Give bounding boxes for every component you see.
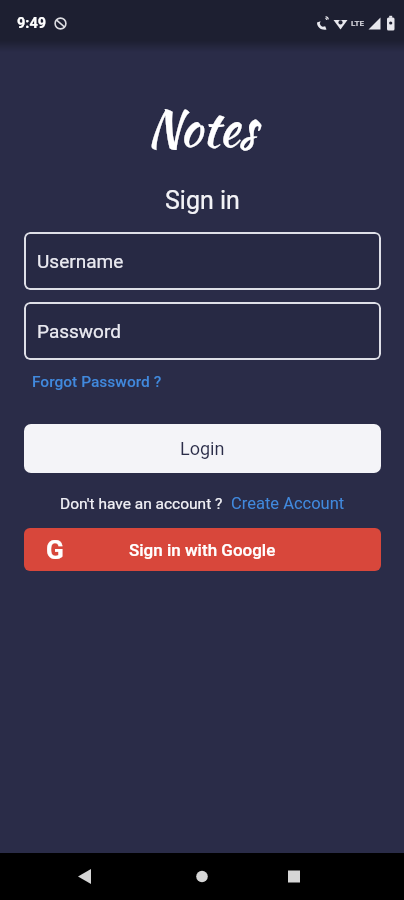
staticText: Sign in [165,186,240,215]
staticText: Login [180,438,225,459]
button[interactable]: Username [24,232,381,290]
staticText: Don't have an account ? [60,495,223,513]
button[interactable] [269,853,404,900]
button[interactable] [134,853,269,900]
button[interactable]: Create Account [231,494,345,513]
button[interactable]: Login [24,424,381,473]
staticText: Notes [147,92,257,165]
staticText: Sign in with Google [129,540,276,560]
button[interactable]: G [24,528,381,571]
staticText: G [46,535,64,565]
button[interactable]: Password [24,302,381,360]
button[interactable]: Forgot Password ? [32,373,162,391]
staticText: LTE [351,19,364,28]
staticText: Password [37,320,121,342]
button[interactable] [0,853,134,900]
staticText: Username [37,250,124,272]
staticText: 9:49 [17,15,47,32]
